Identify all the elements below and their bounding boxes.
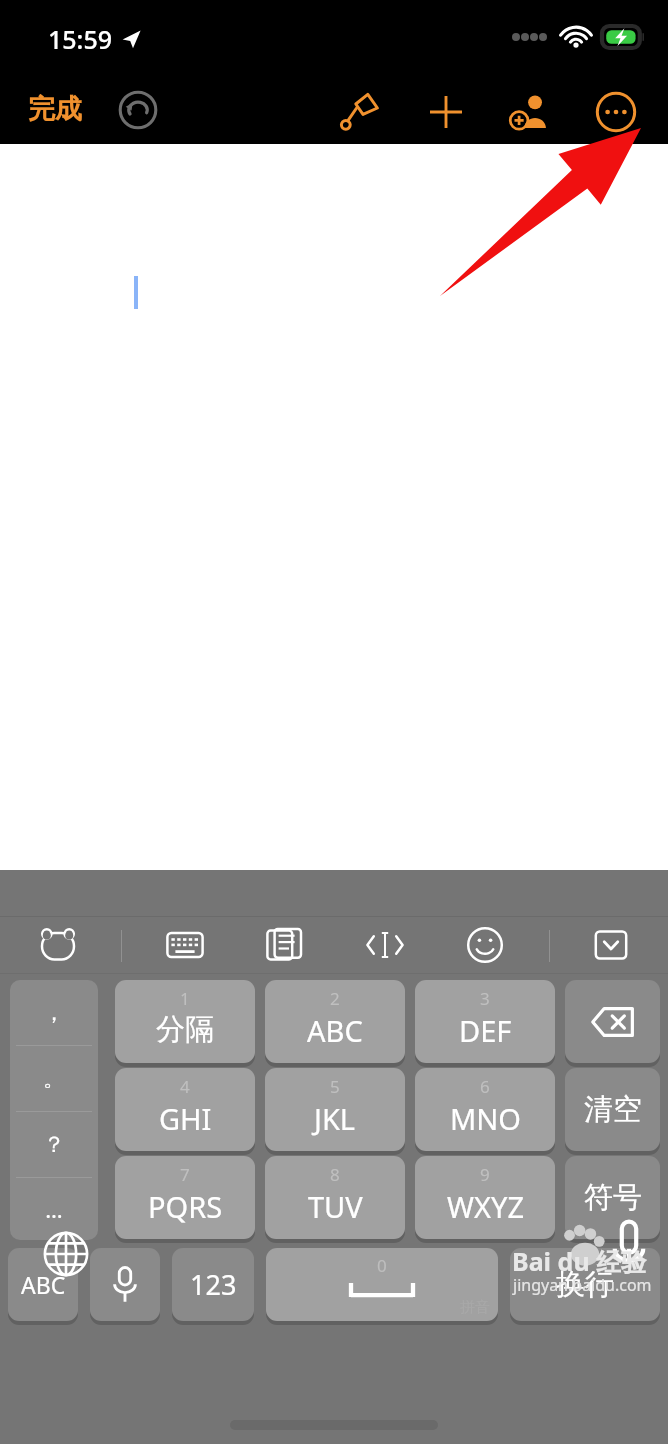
button[interactable]: 符号 (565, 1156, 660, 1239)
button[interactable]: cursor (359, 917, 411, 973)
staticText: 5 (330, 1075, 340, 1098)
button[interactable]: 2 (265, 980, 405, 1063)
staticText: 8 (330, 1163, 340, 1186)
staticText: 清空 (584, 1091, 642, 1128)
staticText: 换行 (556, 1266, 614, 1303)
staticText: 7 (180, 1163, 190, 1186)
staticText: 。 (43, 1065, 65, 1093)
button[interactable] (90, 1248, 160, 1321)
staticText: TUV (308, 1187, 363, 1226)
button[interactable]: 3 (415, 980, 555, 1063)
button[interactable]: ？ (10, 1112, 98, 1177)
staticText: jingyan.baidu.com (513, 1274, 652, 1296)
staticText: 6 (480, 1075, 490, 1098)
staticText: Bai du 经验 (512, 1244, 647, 1278)
button[interactable]: down (585, 917, 637, 973)
staticText: PQRS (148, 1187, 223, 1226)
staticText: JKL (314, 1099, 356, 1138)
button[interactable]: kb (159, 917, 211, 973)
button[interactable]: 完成 (20, 86, 90, 132)
button[interactable]: 5 (265, 1068, 405, 1151)
button[interactable]: du (32, 917, 84, 973)
staticText: 0 (377, 1254, 387, 1277)
staticText: DEF (459, 1011, 512, 1050)
staticText: 3 (480, 987, 490, 1010)
staticText: ABC (21, 1269, 66, 1300)
button[interactable]: 6 (415, 1068, 555, 1151)
button[interactable]: Brush (335, 88, 383, 136)
staticText: 完成 (28, 92, 82, 126)
staticText: 2 (330, 987, 340, 1010)
staticText: ， (43, 999, 65, 1027)
staticText: 123 (190, 1266, 237, 1303)
staticText: WXYZ (447, 1187, 524, 1226)
button[interactable]: clip (259, 917, 311, 973)
staticText: 4 (180, 1075, 190, 1098)
button[interactable]: 1 (115, 980, 255, 1063)
staticText: 符号 (584, 1179, 642, 1216)
staticText: GHI (159, 1099, 212, 1138)
staticText: 分隔 (156, 1011, 214, 1048)
button[interactable]: 8 (265, 1156, 405, 1239)
staticText: … (45, 1194, 63, 1224)
button[interactable]: 0 (266, 1248, 498, 1321)
staticText: ABC (307, 1011, 363, 1050)
staticText: 15:59 (48, 22, 113, 56)
staticText: MNO (450, 1099, 521, 1138)
button[interactable]: Switch language (40, 1228, 92, 1280)
button[interactable]: emoji (459, 917, 511, 973)
button[interactable]: Add person (506, 88, 554, 136)
button[interactable]: 换行 (510, 1248, 660, 1321)
staticText: ？ (43, 1131, 65, 1159)
button[interactable]: ABC (8, 1248, 78, 1321)
button[interactable]: Add (422, 88, 470, 136)
button[interactable]: ， (10, 980, 98, 1045)
button[interactable] (565, 980, 660, 1063)
button[interactable]: 4 (115, 1068, 255, 1151)
button[interactable]: 清空 (565, 1068, 660, 1151)
staticText: 9 (480, 1163, 490, 1186)
button[interactable]: More options (592, 88, 640, 136)
button[interactable]: Undo (116, 88, 160, 132)
button[interactable]: 7 (115, 1156, 255, 1239)
button[interactable]: 。 (10, 1046, 98, 1111)
staticText: 1 (180, 987, 190, 1010)
button[interactable]: … (10, 1178, 98, 1240)
button[interactable]: 123 (172, 1248, 254, 1321)
button[interactable]: 9 (415, 1156, 555, 1239)
